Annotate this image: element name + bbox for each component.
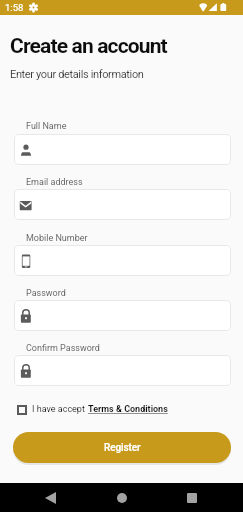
staticText: Create an account: [10, 34, 167, 59]
staticText: Password: [26, 288, 66, 299]
button[interactable]: Register: [13, 432, 231, 463]
staticText: Email address: [26, 177, 83, 188]
staticText: Register: [104, 442, 141, 454]
staticText: I have accept: [32, 404, 88, 415]
button[interactable]: Back: [26, 483, 75, 512]
staticText: Full Name: [26, 121, 67, 132]
button[interactable]: [14, 189, 231, 220]
staticText: Confirm Password: [26, 343, 100, 354]
staticText: Mobile Number: [26, 233, 88, 244]
staticText: Enter your details information: [10, 68, 144, 81]
staticText: 1:58: [5, 2, 24, 13]
button[interactable]: [14, 355, 231, 386]
button[interactable]: Recents: [167, 483, 216, 512]
staticText: Terms & Conditions: [88, 404, 168, 415]
button[interactable]: I have accept: [17, 399, 168, 420]
button[interactable]: [14, 245, 231, 276]
button[interactable]: [14, 134, 231, 165]
button[interactable]: [14, 300, 231, 331]
button[interactable]: Home: [97, 483, 146, 512]
